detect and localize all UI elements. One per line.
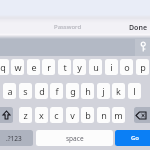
staticText: w — [14, 61, 22, 73]
button[interactable]: w — [11, 59, 24, 75]
button[interactable]: p — [136, 59, 149, 75]
button[interactable]: k — [112, 83, 125, 99]
staticText: m — [114, 109, 123, 121]
staticText: b — [85, 109, 91, 121]
button[interactable]: t — [58, 59, 71, 75]
button[interactable]: g — [66, 83, 79, 99]
staticText: h — [85, 85, 91, 97]
button[interactable]: space — [36, 130, 113, 146]
staticText: .?123 — [6, 134, 22, 143]
staticText: n — [101, 109, 107, 121]
button[interactable]: e — [27, 59, 40, 75]
staticText: v — [70, 109, 75, 121]
button[interactable]: d — [35, 83, 48, 99]
staticText: d — [39, 85, 45, 97]
staticText: o — [124, 61, 130, 73]
button[interactable]: n — [97, 107, 110, 123]
staticText: j — [102, 85, 105, 97]
staticText: q — [0, 61, 6, 73]
staticText: i — [110, 61, 113, 73]
staticText: u — [93, 61, 99, 73]
staticText: f — [55, 85, 59, 97]
staticText: space — [66, 134, 84, 143]
staticText: a — [7, 85, 13, 97]
button[interactable]: o — [120, 59, 133, 75]
staticText: e — [31, 61, 37, 73]
staticText: p — [140, 61, 146, 73]
button[interactable]: Password — [50, 21, 100, 32]
staticText: t — [63, 61, 67, 73]
staticText: c — [54, 109, 59, 121]
button[interactable]: .?123 — [0, 130, 33, 146]
staticText: g — [70, 85, 76, 97]
staticText: Password — [54, 23, 82, 31]
staticText: s — [23, 85, 28, 97]
staticText: l — [133, 85, 136, 97]
button[interactable]: c — [50, 107, 63, 123]
staticText: x — [39, 109, 44, 121]
staticText: y — [77, 61, 82, 73]
staticText: z — [23, 109, 28, 121]
button[interactable]: u — [89, 59, 102, 75]
button[interactable]: s — [19, 83, 32, 99]
button[interactable]: l — [128, 83, 141, 99]
button[interactable]: Backspace — [134, 107, 150, 123]
staticText: k — [116, 85, 121, 97]
button[interactable]: a — [3, 83, 16, 99]
button[interactable]: x — [35, 107, 48, 123]
button[interactable]: Shift — [0, 107, 13, 123]
button[interactable]: Passwords — [135, 39, 150, 56]
staticText: r — [47, 61, 51, 73]
button[interactable]: v — [66, 107, 79, 123]
button[interactable]: j — [97, 83, 110, 99]
button[interactable]: y — [73, 59, 86, 75]
button[interactable]: i — [105, 59, 118, 75]
button[interactable]: r — [42, 59, 55, 75]
button[interactable]: Go — [115, 130, 150, 146]
button[interactable]: f — [50, 83, 63, 99]
button[interactable]: h — [81, 83, 94, 99]
button[interactable]: b — [81, 107, 94, 123]
button[interactable]: q — [0, 59, 9, 75]
staticText: Go — [131, 134, 140, 142]
staticText: Done — [129, 23, 148, 33]
button[interactable]: Done — [126, 22, 150, 33]
button[interactable]: z — [19, 107, 32, 123]
button[interactable]: m — [112, 107, 125, 123]
